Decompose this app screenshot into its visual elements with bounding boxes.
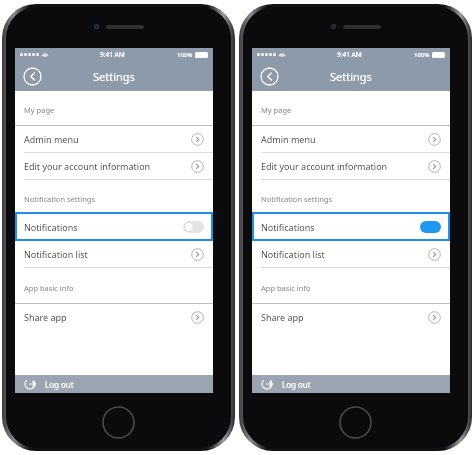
staticText: 9:41 AM: [337, 50, 362, 59]
button[interactable]: Notifications: [252, 212, 450, 241]
staticText: 100%: [414, 51, 430, 59]
staticText: App basic info: [24, 283, 74, 293]
button[interactable]: Back: [23, 67, 42, 86]
staticText: 100%: [177, 51, 193, 59]
staticText: Notifications: [261, 221, 315, 233]
button[interactable]: Notifications toggle: [183, 221, 204, 233]
button[interactable]: Notifications toggle: [420, 221, 441, 233]
staticText: Edit your account information: [24, 160, 151, 172]
staticText: App basic info: [261, 283, 311, 293]
button[interactable]: Log out: [252, 375, 450, 393]
staticText: Share app: [261, 311, 304, 323]
button[interactable]: Edit your account information: [15, 153, 213, 179]
staticText: Settings: [330, 69, 372, 84]
button[interactable]: Admin menu: [15, 126, 213, 152]
staticText: 9:41 AM: [100, 50, 125, 59]
staticText: My page: [261, 105, 292, 115]
staticText: Edit your account information: [261, 160, 388, 172]
staticText: Notifications: [24, 221, 78, 233]
staticText: Log out: [282, 379, 311, 390]
button[interactable]: Admin menu: [252, 126, 450, 152]
staticText: Admin menu: [24, 133, 79, 145]
staticText: Log out: [45, 379, 74, 390]
button[interactable]: Edit your account information: [252, 153, 450, 179]
staticText: Settings: [93, 69, 135, 84]
button[interactable]: Notification list: [252, 241, 450, 267]
staticText: Notification list: [24, 248, 88, 260]
staticText: Share app: [24, 311, 67, 323]
button[interactable]: Share app: [252, 304, 450, 330]
staticText: Admin menu: [261, 133, 316, 145]
button[interactable]: Notifications: [15, 212, 213, 241]
button[interactable]: Notification list: [15, 241, 213, 267]
button[interactable]: Share app: [15, 304, 213, 330]
button[interactable]: Back: [260, 67, 279, 86]
staticText: Notification settings: [261, 194, 332, 204]
button[interactable]: Log out: [15, 375, 213, 393]
staticText: My page: [24, 105, 55, 115]
staticText: Notification list: [261, 248, 325, 260]
staticText: Notification settings: [24, 194, 95, 204]
